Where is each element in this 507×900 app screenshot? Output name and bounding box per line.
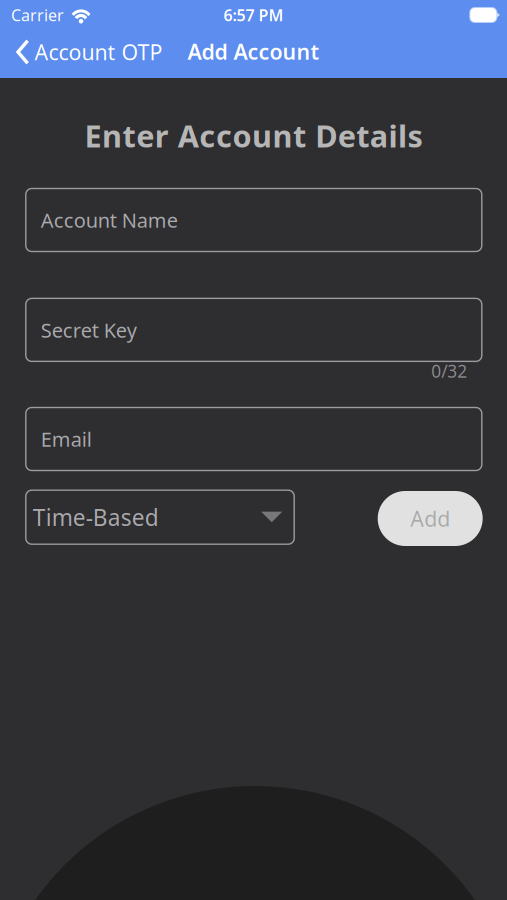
staticText: Account OTP	[35, 38, 163, 66]
button[interactable]: Add	[378, 491, 483, 546]
staticText: Account Name	[41, 207, 178, 233]
button[interactable]: Time-Based	[26, 490, 294, 544]
staticText: Email	[41, 426, 92, 452]
staticText: Secret Key	[41, 317, 137, 343]
button[interactable]: Account OTP	[0, 32, 163, 76]
staticText: 6:57 PM	[223, 4, 283, 26]
staticText: Enter Account Details	[84, 115, 422, 156]
staticText: 0/32	[431, 359, 467, 382]
staticText: Carrier	[11, 4, 64, 26]
staticText: Add	[410, 504, 450, 533]
staticText: Time-Based	[33, 502, 159, 532]
staticText: Add Account	[187, 37, 319, 66]
